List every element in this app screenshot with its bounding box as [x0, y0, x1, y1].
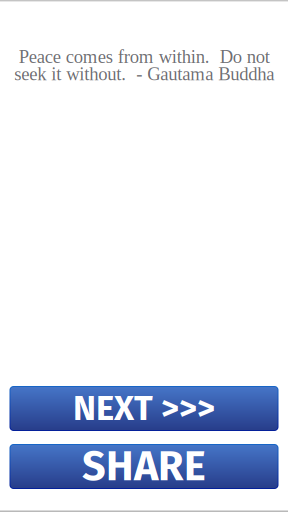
staticText: Peace comes from within. Do not seek it …: [14, 48, 274, 83]
button[interactable]: SHARE: [9, 444, 278, 489]
staticText: SHARE: [82, 442, 206, 491]
staticText: NEXT >>>: [73, 388, 215, 429]
button[interactable]: NEXT >>>: [9, 386, 278, 431]
